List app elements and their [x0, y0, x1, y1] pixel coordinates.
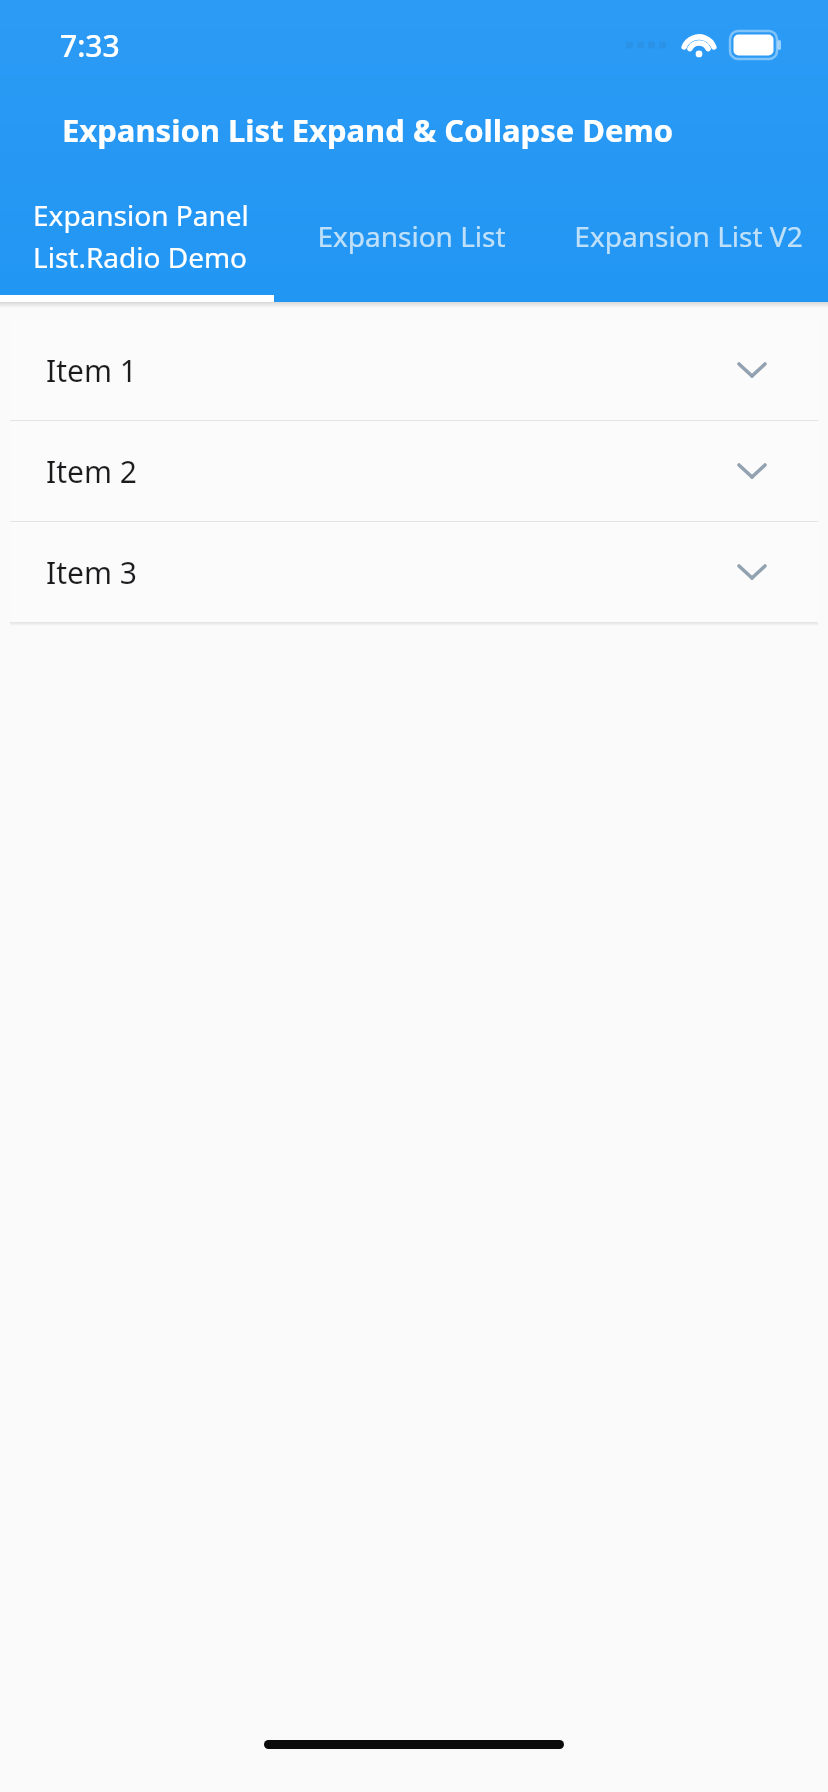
- button[interactable]: Item 2: [10, 421, 818, 521]
- staticText: Item 1: [46, 350, 137, 391]
- staticText: 7:33: [60, 25, 120, 66]
- button[interactable]: Item 3: [10, 522, 818, 622]
- staticText: Item 3: [46, 552, 137, 593]
- staticText: Expansion List Expand & Collapse Demo: [62, 109, 674, 151]
- staticText: Expansion List V2: [574, 217, 803, 255]
- button[interactable]: Expansion List V2: [549, 170, 828, 302]
- button[interactable]: Item 1: [10, 320, 818, 420]
- other: Expand Item 3: [732, 552, 772, 592]
- staticText: Expansion List: [317, 217, 506, 255]
- button[interactable]: Expansion List: [274, 170, 549, 302]
- other: Expand Item 1: [732, 350, 772, 390]
- other: Expand Item 2: [732, 451, 772, 491]
- staticText: Expansion Panel: [33, 196, 249, 234]
- staticText: Item 2: [46, 451, 137, 492]
- button[interactable]: Expansion Panel: [0, 170, 274, 302]
- staticText: List.Radio Demo: [33, 238, 248, 276]
